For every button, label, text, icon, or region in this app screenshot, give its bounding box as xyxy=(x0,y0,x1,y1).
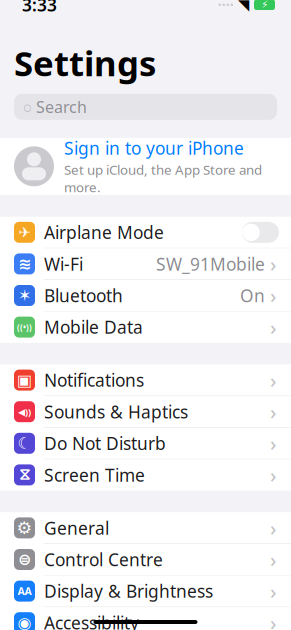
staticText: On xyxy=(240,284,265,307)
button[interactable]: ⧖ xyxy=(0,459,291,490)
button[interactable]: ◉ xyxy=(0,607,291,630)
staticText: ◉ xyxy=(17,614,31,630)
staticText: Screen Time xyxy=(44,463,145,486)
staticText: SW_91Mobile xyxy=(156,252,265,275)
staticText: › xyxy=(270,398,277,425)
staticText: ((•)) xyxy=(17,322,32,332)
staticText: General xyxy=(44,516,109,539)
staticText: Sounds & Haptics xyxy=(44,400,188,423)
staticText: Settings xyxy=(14,40,156,86)
staticText: AA xyxy=(17,584,31,598)
staticText: ⚡︎ xyxy=(261,0,268,11)
staticText: Accessibility xyxy=(44,611,139,630)
staticText: 3:33 xyxy=(22,0,57,16)
button[interactable]: ☾ xyxy=(0,428,291,459)
staticText: ✶ xyxy=(18,286,31,305)
staticText: ⊜ xyxy=(18,550,31,569)
staticText: › xyxy=(270,462,277,488)
staticText: › xyxy=(270,282,277,309)
staticText: ◥ xyxy=(238,0,249,13)
staticText: Airplane Mode xyxy=(44,221,164,244)
staticText: › xyxy=(270,515,277,541)
staticText: › xyxy=(270,314,277,340)
staticText: › xyxy=(270,367,277,393)
staticText: › xyxy=(270,609,277,630)
button[interactable]: ◌ xyxy=(14,94,277,120)
staticText: Mobile Data xyxy=(44,316,143,339)
button[interactable]: ✈ xyxy=(0,217,291,248)
button[interactable]: ▣ xyxy=(0,365,291,396)
staticText: Display & Brightness xyxy=(44,580,213,603)
staticText: › xyxy=(270,546,277,573)
staticText: ☾ xyxy=(17,434,31,452)
button[interactable]: Sign in to your iPhone xyxy=(0,138,291,195)
button[interactable]: AA xyxy=(0,576,291,607)
staticText: ◀)) xyxy=(18,405,31,418)
staticText: Search xyxy=(36,96,87,117)
staticText: › xyxy=(270,251,277,277)
staticText: ◌ xyxy=(23,97,32,117)
staticText: Wi-Fi xyxy=(44,252,83,275)
staticText: › xyxy=(270,430,277,457)
button[interactable]: ≋ xyxy=(0,248,291,279)
staticText: Bluetooth xyxy=(44,284,123,307)
button[interactable]: ◀)) xyxy=(0,396,291,427)
button[interactable]: ✶ xyxy=(0,280,291,311)
staticText: Sign in to your iPhone xyxy=(64,137,244,160)
button[interactable]: ⚙ xyxy=(0,512,291,543)
staticText: ≋ xyxy=(18,255,31,273)
staticText: ▣ xyxy=(17,371,32,389)
button[interactable]: ⊜ xyxy=(0,544,291,575)
staticText: Set up iCloud, the App Store and more. xyxy=(64,161,262,196)
staticText: Notifications xyxy=(44,369,144,392)
staticText: ✈ xyxy=(18,224,30,241)
staticText: Control Centre xyxy=(44,548,163,571)
staticText: › xyxy=(270,578,277,604)
staticText: ⧖ xyxy=(19,467,30,483)
button[interactable]: ((•)) xyxy=(0,312,291,343)
staticText: Do Not Disturb xyxy=(44,432,166,455)
staticText: ⚙ xyxy=(16,518,32,538)
